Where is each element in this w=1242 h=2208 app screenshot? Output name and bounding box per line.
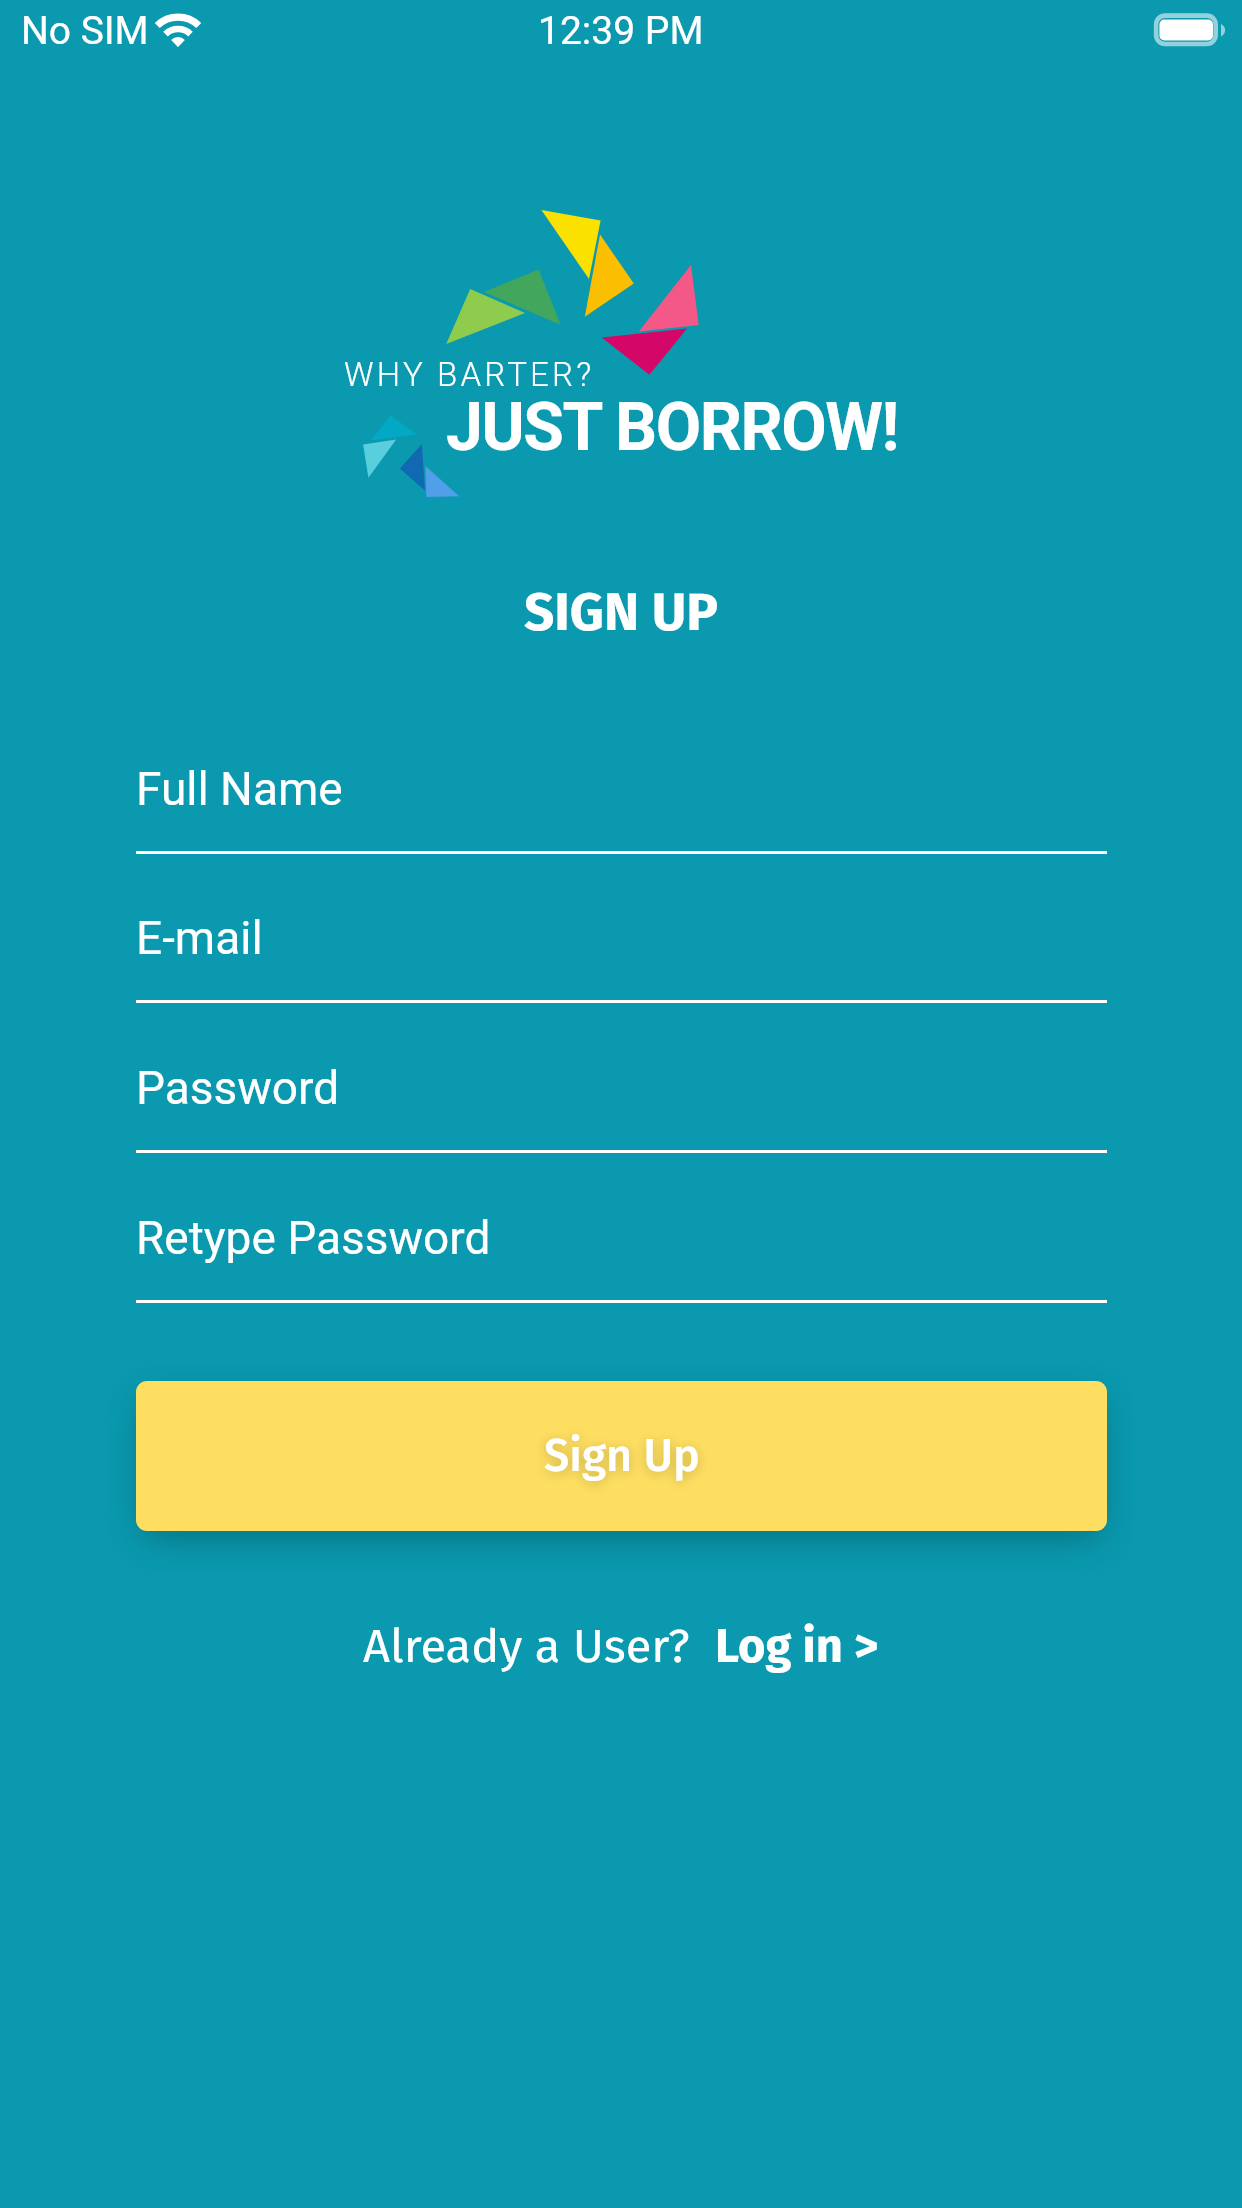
staticText: No SIM [21, 8, 149, 54]
staticText: WHY BARTER? [344, 355, 595, 394]
staticText: Password [136, 1061, 340, 1115]
staticText: Log in > [715, 1618, 879, 1674]
other: Battery full [1148, 8, 1234, 54]
button[interactable]: Already a User? [363, 1607, 879, 1685]
button[interactable]: Password [136, 1050, 1107, 1170]
staticText: SIGN UP [524, 580, 719, 644]
button[interactable]: Full Name [136, 751, 1107, 871]
button[interactable]: Retype Password [136, 1200, 1107, 1320]
other: Wi-Fi signal [155, 11, 203, 49]
staticText: 12:39 PM [538, 8, 704, 54]
other: Why barter? Just borrow! [0, 0, 1242, 2208]
staticText: Already a User? [363, 1618, 690, 1674]
staticText: JUST BORROW! [446, 389, 898, 466]
staticText: Retype Password [136, 1211, 491, 1265]
staticText: Sign Up [544, 1429, 700, 1483]
button[interactable]: Sign Up [136, 1381, 1107, 1531]
staticText: Full Name [136, 762, 343, 816]
staticText: E-mail [136, 911, 263, 965]
button[interactable]: E-mail [136, 900, 1107, 1020]
